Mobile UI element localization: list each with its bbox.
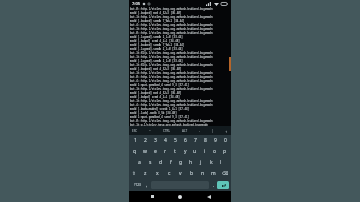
- button[interactable]: ?123: [131, 181, 143, 189]
- staticText: bst.lt:http.l/strlev.tmsg.org.mrhash.bsd…: [130, 87, 213, 91]
- button[interactable]: i: [200, 146, 210, 157]
- button[interactable]: 2: [140, 135, 150, 146]
- staticText: e: [154, 148, 157, 155]
- staticText: q: [133, 148, 137, 155]
- button[interactable]: Enter: [217, 181, 229, 189]
- staticText: .: [213, 182, 215, 188]
- button[interactable]: b: [186, 168, 197, 179]
- staticText: bst.lt:http.l/strlev.tmsg.org.mrhash.bsd…: [130, 15, 213, 19]
- staticText: bst.lt:81/p.l/strlev.tmsg.org.mrhash.bsd…: [130, 63, 213, 67]
- button[interactable]: z: [139, 168, 151, 179]
- staticText: 4: [164, 137, 167, 144]
- button[interactable]: ESC: [132, 128, 138, 134]
- button[interactable]: o: [210, 146, 220, 157]
- staticText: 2: [144, 137, 147, 144]
- staticText: s: [149, 159, 152, 166]
- button[interactable]: t: [170, 146, 180, 157]
- staticText: bst.0::http.l/strlev.tmsg.org.mrhash.bsd…: [130, 31, 213, 35]
- button[interactable]: Home: [174, 191, 186, 202]
- staticText: -: [199, 129, 200, 133]
- button[interactable]: ~: [149, 128, 151, 134]
- staticText: mrdd [.bsdped] mrd 4,52+3 [36.40]: [130, 91, 182, 95]
- staticText: c: [168, 170, 171, 177]
- button[interactable]: ALT: [182, 128, 188, 134]
- staticText: bst.4::http.l/strlev.tmsg.org.mrhash.bsd…: [130, 103, 213, 107]
- button[interactable]: -: [199, 128, 200, 134]
- staticText: mrdd [.bsdped] mrd 4,52+3 [36.40]: [130, 67, 182, 71]
- button[interactable]: n: [197, 168, 208, 179]
- button[interactable]: 7: [190, 135, 200, 146]
- staticText: 7:05: [132, 1, 140, 6]
- button[interactable]: r: [160, 146, 170, 157]
- button[interactable]: l: [216, 157, 226, 168]
- button[interactable]: |: [212, 128, 214, 134]
- button[interactable]: Backspace: [219, 168, 231, 179]
- staticText: i: [204, 148, 206, 155]
- staticText: ?123: [134, 183, 141, 187]
- staticText: bst.4::http.l/strlev.tmsg.org.mrhash.bsd…: [130, 79, 213, 83]
- button[interactable]: 5: [170, 135, 180, 146]
- button[interactable]: d: [156, 157, 166, 168]
- button[interactable]: 6: [180, 135, 190, 146]
- button[interactable]: CTRL: [163, 128, 171, 134]
- button[interactable]: g: [176, 157, 186, 168]
- button[interactable]: c: [163, 168, 175, 179]
- staticText: mrdd 1:nput.grmdbrd,4 srmd 9,3 [37.41]: [130, 83, 190, 87]
- staticText: o: [213, 148, 217, 155]
- button[interactable]: w: [140, 146, 150, 157]
- staticText: 5: [174, 137, 177, 144]
- button[interactable]: y: [180, 146, 190, 157]
- staticText: w: [143, 148, 147, 155]
- staticText: d: [159, 159, 163, 166]
- button[interactable]: m: [208, 168, 219, 179]
- staticText: CTRL: [163, 129, 171, 133]
- staticText: m: [211, 170, 216, 177]
- button[interactable]: 3: [150, 135, 160, 146]
- button[interactable]: p: [220, 146, 230, 157]
- button[interactable]: ,: [143, 181, 150, 189]
- button[interactable]: q: [130, 146, 140, 157]
- button[interactable]: j: [196, 157, 206, 168]
- button[interactable]: k: [206, 157, 216, 168]
- button[interactable]: v: [175, 168, 186, 179]
- button[interactable]: ↑: [225, 128, 228, 134]
- button[interactable]: x: [151, 168, 163, 179]
- staticText: ⇧: [132, 171, 136, 176]
- button[interactable]: Back: [203, 191, 215, 202]
- staticText: y: [184, 148, 187, 155]
- staticText: x: [156, 170, 159, 177]
- staticText: t: [174, 148, 176, 155]
- staticText: mrdd [.lsrb].mrdb 3,5b [34.48]: [130, 111, 177, 115]
- button[interactable]: .: [210, 181, 217, 189]
- button[interactable]: 8: [200, 135, 210, 146]
- button[interactable]: 9: [210, 135, 220, 146]
- staticText: 3: [154, 137, 157, 144]
- button[interactable]: s: [145, 157, 156, 168]
- staticText: 6: [184, 137, 187, 144]
- staticText: mrdd 1:nput.grmdbrd,4 srmd 9,3 [37.41]: [130, 115, 190, 119]
- staticText: ⌫: [222, 171, 229, 176]
- staticText: bst.lt:http.l/strlev.tmsg.org.mrhash.bsd…: [130, 55, 213, 59]
- button[interactable]: a: [134, 157, 145, 168]
- staticText: v: [179, 170, 182, 177]
- button[interactable]: f: [166, 157, 176, 168]
- staticText: 0: [224, 137, 227, 144]
- staticText: u: [193, 148, 197, 155]
- staticText: mrdd [.bsrb+msded] srrab 1,4+1 [37.44]: [130, 107, 190, 111]
- button[interactable]: 0: [220, 135, 230, 146]
- button[interactable]: 1: [130, 135, 140, 146]
- staticText: n: [201, 170, 205, 177]
- staticText: |: [212, 129, 214, 133]
- staticText: bst.0::http.l/strlev.tmsg.org.mrhash.bsd…: [130, 119, 213, 123]
- staticText: p: [223, 148, 227, 155]
- staticText: b: [190, 170, 194, 177]
- button[interactable]: h: [186, 157, 196, 168]
- staticText: mrdd [.bsubed] srmdb 7,%d+1 [34.44]: [130, 19, 185, 23]
- button[interactable]: Shift: [129, 168, 139, 179]
- staticText: r: [164, 148, 167, 155]
- button[interactable]: 4: [160, 135, 170, 146]
- button[interactable]: e: [150, 146, 160, 157]
- button[interactable]: u: [190, 146, 200, 157]
- button[interactable]: Recents: [146, 191, 158, 202]
